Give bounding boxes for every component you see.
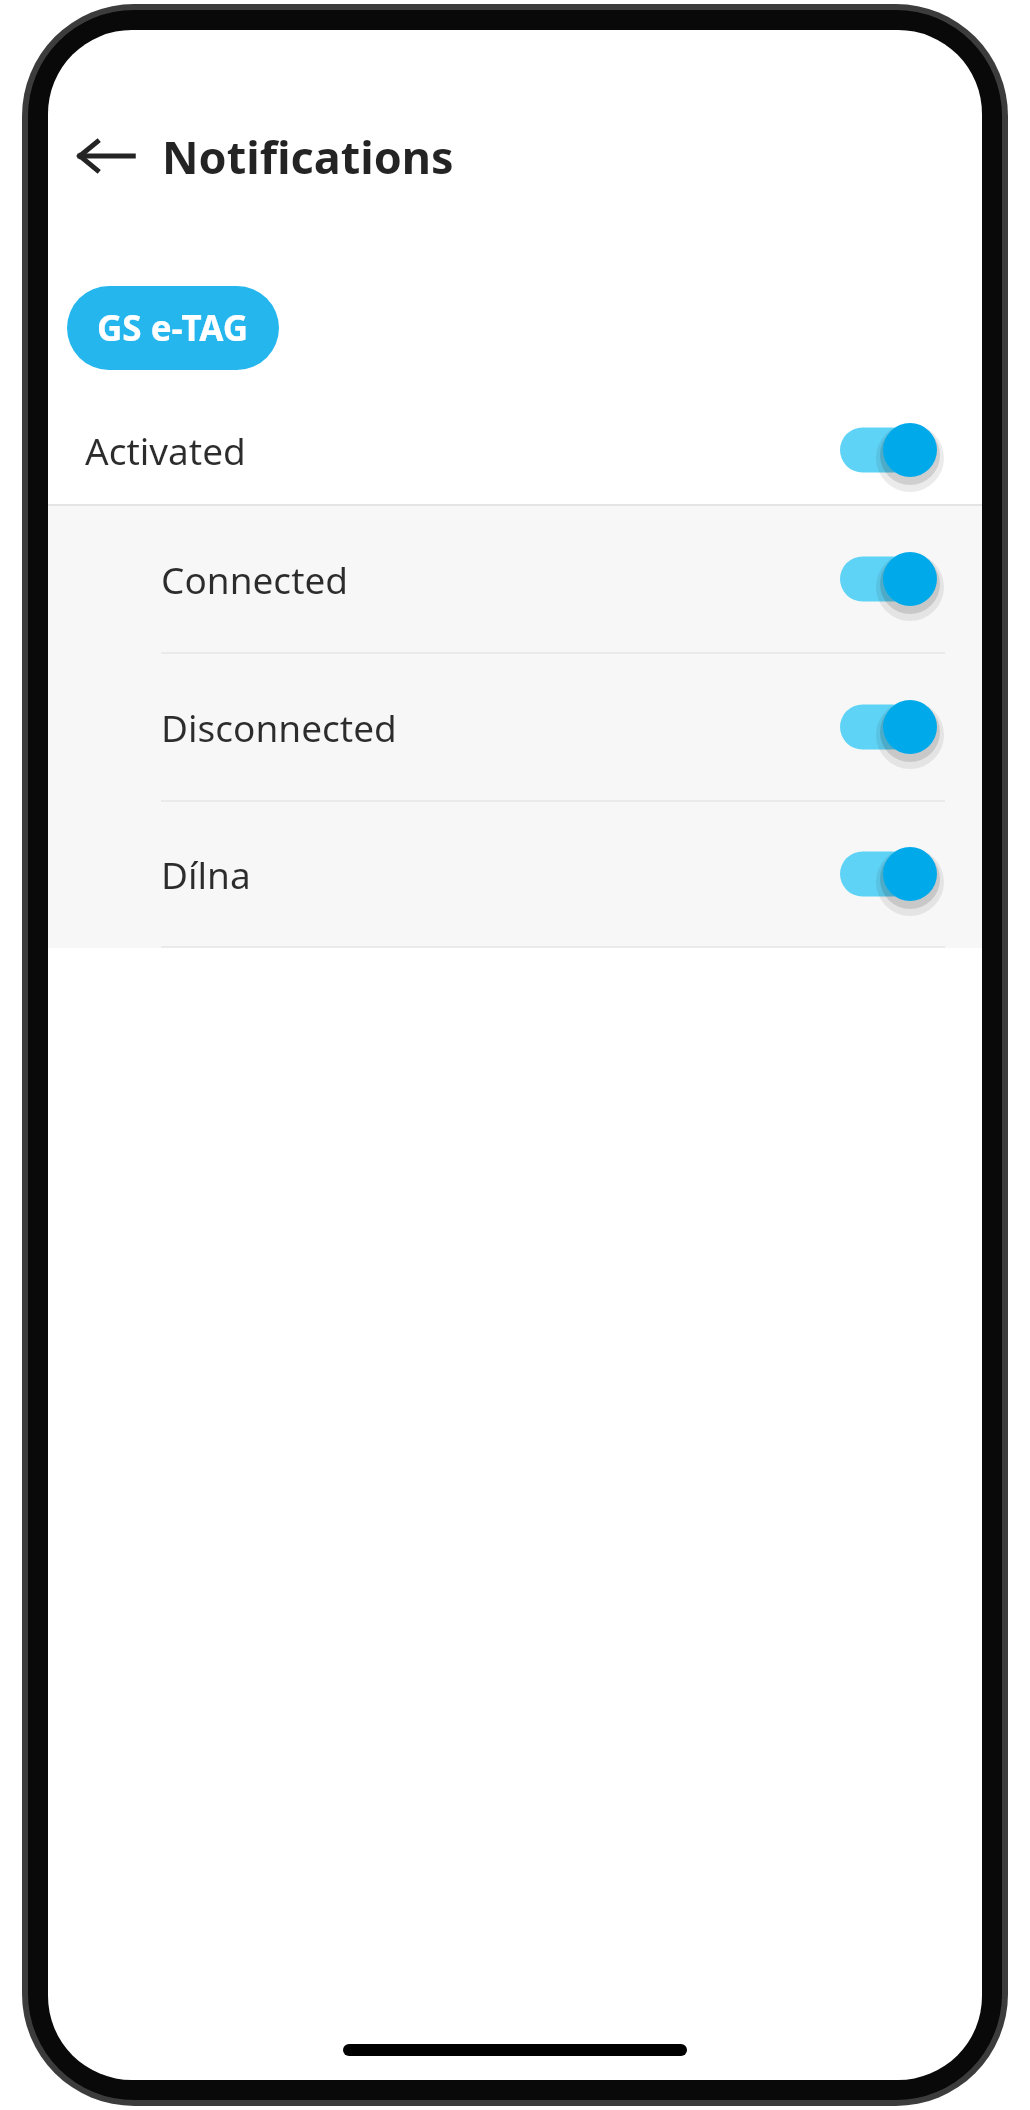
button[interactable]: Disconnected [48, 654, 982, 800]
staticText: Activated [85, 425, 246, 475]
button[interactable]: Connected [48, 506, 982, 652]
staticText: Disconnected [161, 702, 397, 752]
staticText: Connected [161, 554, 349, 604]
button[interactable]: Toggle Activated [836, 413, 948, 487]
button[interactable]: Toggle Connected [836, 542, 948, 616]
button[interactable]: Toggle Disconnected [836, 690, 948, 764]
staticText: Notifications [162, 126, 454, 187]
button[interactable]: Dílna [48, 802, 982, 946]
button[interactable]: Back [62, 112, 150, 200]
staticText: GS e-TAG [97, 304, 249, 352]
staticText: Dílna [161, 849, 251, 899]
button[interactable]: Activated [48, 396, 982, 504]
button[interactable]: GS e-TAG [67, 286, 279, 370]
button[interactable]: Toggle Dílna [836, 837, 948, 911]
